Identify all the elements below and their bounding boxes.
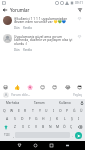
staticText: D — [21, 116, 24, 121]
button[interactable]: W — [8, 107, 15, 114]
staticText: Ğ — [73, 108, 76, 113]
button[interactable]: A — [3, 115, 11, 122]
button[interactable]: Q — [0, 107, 8, 114]
button[interactable]: Emoji — [76, 83, 83, 90]
button[interactable]: Back — [11, 141, 27, 150]
staticText: B — [42, 124, 45, 129]
button[interactable]: Ç — [68, 123, 75, 130]
staticText: Y — [39, 108, 41, 113]
staticText: Yorumlar — [10, 7, 30, 13]
button[interactable]: C — [26, 123, 33, 130]
button[interactable]: V — [33, 123, 40, 130]
staticText: . — [72, 133, 73, 138]
staticText: Ç — [70, 124, 73, 129]
staticText: V — [35, 124, 38, 129]
staticText: U — [45, 108, 48, 113]
staticText: Yorum ekle… — [11, 93, 31, 97]
button[interactable]: Ü — [78, 107, 85, 114]
staticText: Kullanıcı — [59, 101, 72, 105]
button[interactable]: Ö — [61, 123, 68, 130]
button[interactable]: K — [54, 115, 61, 122]
button[interactable]: D — [19, 115, 26, 122]
staticText: A — [6, 116, 9, 121]
button[interactable]: Y — [36, 107, 43, 114]
button[interactable]: Shift — [0, 123, 11, 130]
staticText: 😀 — [3, 84, 9, 90]
button[interactable]: E — [15, 107, 22, 114]
button[interactable]: H — [40, 115, 47, 122]
staticText: I — [53, 108, 55, 113]
button[interactable]: Yorum ekle… — [0, 91, 85, 99]
button[interactable]: I — [75, 115, 82, 122]
staticText: @kullanici 1 1 1 1 uygulamanizdan devam … — [14, 16, 76, 24]
staticText: Uygulamaniz güzel ama yorum kısmında, dü… — [14, 34, 76, 46]
button[interactable]: X — [19, 123, 26, 130]
button[interactable]: ?123 — [2, 131, 11, 139]
button[interactable]: Like — [77, 34, 82, 39]
button[interactable]: T — [29, 107, 36, 114]
button[interactable]: O — [57, 107, 64, 114]
button[interactable]: L — [61, 115, 68, 122]
button[interactable]: Send — [75, 132, 82, 139]
staticText: K — [56, 116, 59, 121]
button[interactable]: N — [47, 123, 54, 130]
staticText: N — [49, 124, 52, 129]
button[interactable]: Emoji — [14, 83, 21, 90]
button[interactable]: Emoji — [27, 83, 34, 90]
button[interactable]: Merhaba — [0, 99, 26, 106]
button[interactable]: Z — [11, 123, 19, 130]
button[interactable]: Emoji — [39, 83, 46, 90]
button[interactable]: Like — [77, 16, 82, 21]
staticText: F — [29, 116, 31, 121]
staticText: Dün — [14, 26, 20, 30]
staticText: 😍 — [52, 84, 58, 90]
staticText: R — [24, 108, 27, 113]
button[interactable]: Tamam — [26, 99, 52, 106]
staticText: P — [66, 108, 69, 113]
button[interactable]: I — [50, 107, 57, 114]
button[interactable]: Back — [2, 7, 8, 13]
button[interactable]: Recent apps — [43, 141, 59, 150]
button[interactable]: U — [43, 107, 50, 114]
staticText: O — [59, 108, 62, 113]
button[interactable]: Ğ — [71, 107, 78, 114]
staticText: 🌸 — [27, 84, 34, 90]
button[interactable]: Emoji — [51, 83, 58, 90]
button[interactable]: Kullanıcı — [52, 99, 78, 106]
staticText: Paylaş — [73, 93, 82, 97]
button[interactable]: Comma — [11, 131, 15, 139]
staticText: 😂 — [65, 84, 71, 90]
button[interactable]: Uygulamaniz güzel ama yorum kısmında, dü… — [0, 32, 85, 54]
staticText: E — [18, 108, 20, 113]
button[interactable]: Emoji — [2, 83, 9, 90]
button[interactable]: J — [47, 115, 54, 122]
button[interactable]: B — [40, 123, 47, 130]
staticText: 09:11 — [75, 1, 84, 5]
staticText: Ö — [63, 124, 66, 129]
staticText: Merhaba — [6, 101, 20, 105]
button[interactable]: F — [26, 115, 33, 122]
staticText: G — [35, 116, 38, 121]
staticText: Yanıtla — [23, 48, 32, 52]
button[interactable]: @kullanici 1 1 1 1 uygulamanizdan devam … — [0, 14, 85, 32]
staticText: X — [22, 124, 24, 129]
button[interactable]: Period — [70, 131, 74, 139]
button[interactable]: M — [54, 123, 61, 130]
staticText: J — [50, 116, 51, 121]
button[interactable]: Voice input — [78, 99, 85, 106]
button[interactable]: Filter — [77, 7, 83, 13]
button[interactable]: Emoji — [64, 83, 71, 90]
button[interactable]: G — [33, 115, 40, 122]
button[interactable]: Home — [27, 141, 43, 150]
staticText: H — [42, 116, 45, 121]
button[interactable]: R — [22, 107, 29, 114]
button[interactable]: P — [64, 107, 71, 114]
button[interactable]: Keyboard indicator — [59, 141, 75, 150]
staticText: L — [64, 116, 66, 121]
button[interactable]: S — [11, 115, 19, 122]
button[interactable]: Ş — [68, 115, 75, 122]
button[interactable]: Backspace — [75, 123, 85, 130]
staticText: Yanıtla — [23, 26, 32, 30]
staticText: , — [13, 133, 14, 138]
